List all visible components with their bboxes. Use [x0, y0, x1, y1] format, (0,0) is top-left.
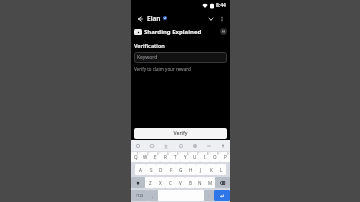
- button[interactable]: GIF: [148, 142, 156, 150]
- button[interactable]: X: [155, 177, 165, 188]
- button[interactable]: Back: [134, 13, 145, 24]
- button[interactable]: 2: [140, 152, 150, 162]
- button[interactable]: 3: [150, 152, 160, 162]
- button[interactable]: 6: [180, 152, 190, 162]
- staticText: Y: [184, 154, 187, 160]
- button[interactable]: 0: [220, 152, 230, 162]
- staticText: 9: [217, 152, 219, 156]
- button[interactable]: Voice input: [219, 142, 227, 150]
- staticText: 7: [197, 152, 199, 156]
- staticText: 5: [177, 152, 179, 156]
- button[interactable]: Keyword: [134, 52, 227, 63]
- staticText: D: [159, 167, 163, 173]
- staticText: 6: [187, 152, 189, 156]
- staticText: Sharding Explained: [144, 28, 202, 36]
- button[interactable]: ?123: [131, 190, 148, 201]
- staticText: Q: [134, 154, 138, 160]
- button[interactable]: N: [195, 177, 205, 188]
- button[interactable]: C: [165, 177, 175, 188]
- button[interactable]: Settings: [191, 142, 199, 150]
- button[interactable]: More: [205, 142, 213, 150]
- staticText: Verify to claim your reward: [134, 66, 191, 72]
- button[interactable]: V: [175, 177, 185, 188]
- staticText: P: [224, 154, 227, 160]
- button[interactable]: Sharding Explained: [134, 25, 227, 38]
- staticText: Verification: [134, 42, 165, 49]
- staticText: 1: [137, 152, 139, 156]
- button[interactable]: Clipboard: [177, 142, 185, 150]
- staticText: G: [179, 167, 183, 173]
- staticText: Z: [149, 180, 152, 186]
- button[interactable]: D: [156, 164, 166, 175]
- staticText: R: [164, 154, 167, 160]
- staticText: 4: [167, 152, 169, 156]
- button[interactable]: 7: [190, 152, 200, 162]
- staticText: ?123: [136, 193, 144, 198]
- button[interactable]: 5: [170, 152, 180, 162]
- button[interactable]: More options: [216, 13, 227, 24]
- button[interactable]: L: [216, 164, 226, 175]
- staticText: 8: [207, 152, 209, 156]
- staticText: 文: [164, 144, 168, 149]
- button[interactable]: M: [205, 177, 215, 188]
- staticText: 0: [227, 152, 229, 156]
- button[interactable]: Google Assistant: [134, 142, 142, 150]
- button[interactable]: S: [146, 164, 156, 175]
- button[interactable]: H: [186, 164, 196, 175]
- staticText: B: [189, 180, 192, 186]
- staticText: Elan: [147, 14, 161, 23]
- button[interactable]: Backspace: [215, 177, 230, 188]
- button[interactable]: Pause: [220, 28, 227, 35]
- button[interactable]: F: [166, 164, 176, 175]
- button[interactable]: Z: [145, 177, 155, 188]
- staticText: X: [159, 180, 162, 186]
- staticText: C: [169, 180, 172, 186]
- button[interactable]: Enter: [214, 190, 230, 201]
- staticText: W: [143, 154, 148, 160]
- staticText: V: [179, 180, 182, 186]
- staticText: 8:44: [216, 2, 226, 9]
- button[interactable]: Translate: [162, 142, 170, 150]
- staticText: J: [200, 167, 202, 173]
- staticText: 3: [157, 152, 159, 156]
- button[interactable]: K: [206, 164, 216, 175]
- staticText: E: [154, 154, 157, 160]
- staticText: N: [198, 180, 202, 186]
- staticText: ,: [152, 193, 154, 199]
- button[interactable]: Expand: [205, 13, 216, 24]
- button[interactable]: Comma: [148, 190, 158, 201]
- staticText: I: [204, 154, 206, 160]
- button[interactable]: G: [176, 164, 186, 175]
- button[interactable]: 1: [131, 152, 140, 162]
- button[interactable]: 4: [160, 152, 170, 162]
- staticText: L: [220, 167, 223, 173]
- staticText: T: [174, 154, 177, 160]
- button[interactable]: A: [135, 164, 146, 175]
- staticText: F: [170, 167, 173, 173]
- staticText: M: [208, 180, 213, 186]
- button[interactable]: 8: [200, 152, 210, 162]
- button[interactable]: 9: [210, 152, 220, 162]
- staticText: H: [189, 167, 193, 173]
- button[interactable]: B: [185, 177, 195, 188]
- staticText: A: [139, 167, 142, 173]
- staticText: 2: [147, 152, 149, 156]
- staticText: Keyword: [137, 54, 158, 61]
- staticText: Verify: [173, 130, 188, 137]
- button[interactable]: Verify: [134, 128, 227, 139]
- staticText: U: [193, 154, 197, 160]
- staticText: K: [210, 167, 213, 173]
- staticText: S: [150, 167, 153, 173]
- button[interactable]: Shift: [131, 177, 145, 188]
- staticText: .: [208, 193, 210, 199]
- staticText: O: [213, 154, 217, 160]
- button[interactable]: J: [196, 164, 206, 175]
